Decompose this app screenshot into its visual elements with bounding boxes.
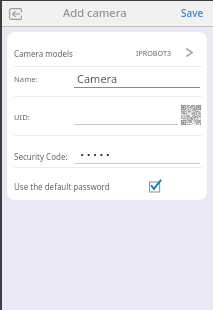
staticText: Save: [181, 6, 204, 20]
button[interactable]: [7, 166, 207, 200]
button[interactable]: Save: [172, 6, 213, 20]
button[interactable]: Back: [5, 4, 25, 24]
button[interactable]: Use the default password: [149, 179, 162, 192]
staticText: Security Code:: [14, 151, 68, 162]
button[interactable]: [7, 66, 207, 96]
button[interactable]: [7, 96, 207, 135]
staticText: Camera: [77, 71, 118, 86]
button[interactable]: [7, 135, 207, 166]
staticText: Name:: [14, 74, 38, 84]
staticText: Camera models: [14, 48, 73, 59]
staticText: UID:: [14, 112, 30, 122]
staticText: Use the default password: [14, 181, 110, 192]
button[interactable]: Scan QR code: [181, 105, 201, 125]
button[interactable]: [7, 32, 207, 66]
staticText: IPROBOT3: [136, 48, 172, 58]
staticText: Add camera: [63, 5, 127, 20]
